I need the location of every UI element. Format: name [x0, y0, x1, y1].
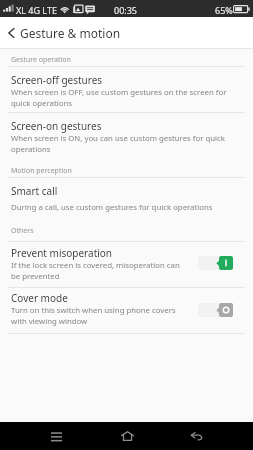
button[interactable]: Prevent misoperation — [0, 242, 253, 287]
staticText: Motion perception — [11, 166, 72, 176]
staticText: Gesture & motion — [20, 25, 121, 41]
staticText: Cover mode — [11, 291, 68, 305]
staticText: Others — [11, 226, 34, 236]
staticText: Prevent misoperation — [11, 246, 113, 260]
button[interactable]: Back — [182, 422, 212, 450]
button[interactable]: Switch off — [198, 303, 233, 317]
staticText: 00:35 — [114, 4, 138, 16]
staticText: During a call, use custom gestures for q… — [11, 202, 213, 213]
button[interactable]: Cover mode — [0, 288, 253, 333]
staticText: When screen is OFF, use custom gestures … — [11, 87, 227, 109]
button[interactable]: Recent apps — [42, 422, 71, 450]
staticText: Smart call — [11, 184, 58, 198]
staticText: XL 4G LTE — [16, 4, 57, 16]
button[interactable]: Screen-on gestures — [0, 113, 253, 158]
staticText: If the lock screen is covered, misoperat… — [11, 260, 180, 282]
staticText: When screen is ON, you can use custom ge… — [11, 133, 225, 155]
staticText: Gesture operation — [11, 55, 71, 65]
button[interactable]: Screen-off gestures — [0, 67, 253, 112]
button[interactable]: Switch on — [198, 256, 233, 270]
staticText: Screen-off gestures — [11, 73, 103, 87]
staticText: Turn on this switch when using phone cov… — [11, 305, 176, 327]
button[interactable]: Back — [0, 17, 22, 48]
staticText: 65% — [215, 4, 233, 16]
button[interactable]: Smart call — [0, 178, 253, 222]
staticText: Screen-on gestures — [11, 119, 102, 133]
button[interactable]: Home — [112, 422, 142, 450]
